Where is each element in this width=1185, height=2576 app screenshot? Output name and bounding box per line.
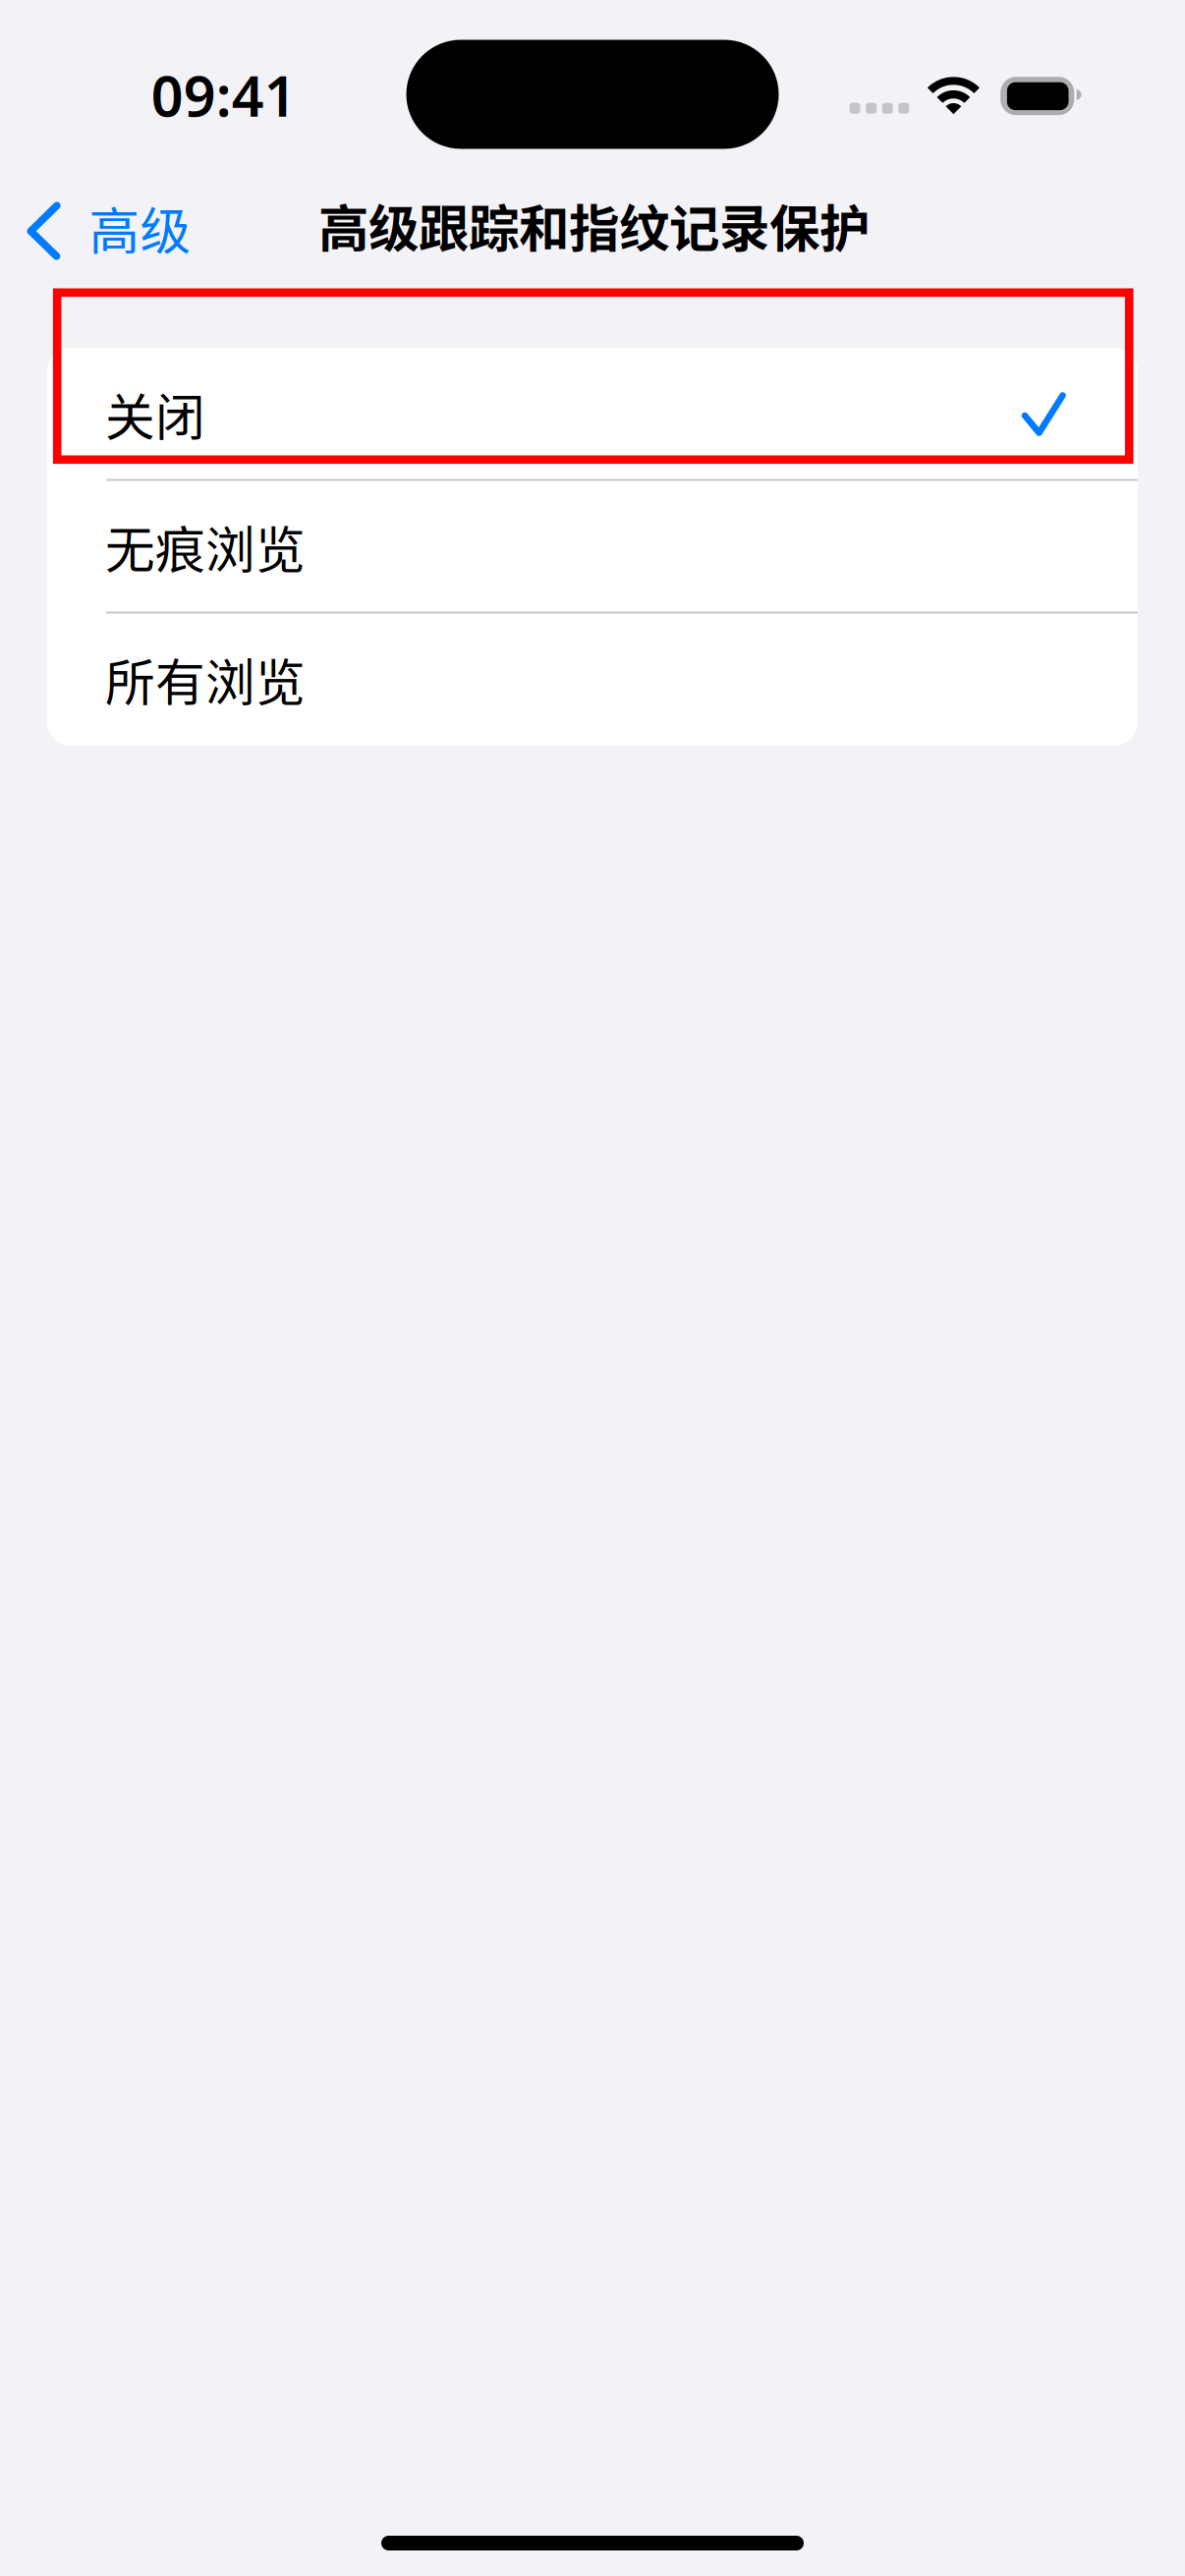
button[interactable]: 高级 [8,181,228,279]
button[interactable]: 关闭 [47,348,1138,480]
staticText: 高级 [89,191,191,264]
button[interactable]: 无痕浏览 [47,480,1138,613]
staticText: 09:41 [151,57,297,132]
staticText: 无痕浏览 [105,511,306,583]
staticText: 高级跟踪和指纹记录保护 [318,188,870,262]
button[interactable]: 所有浏览 [47,613,1138,746]
staticText: 所有浏览 [105,643,306,715]
staticText: 关闭 [105,378,205,450]
